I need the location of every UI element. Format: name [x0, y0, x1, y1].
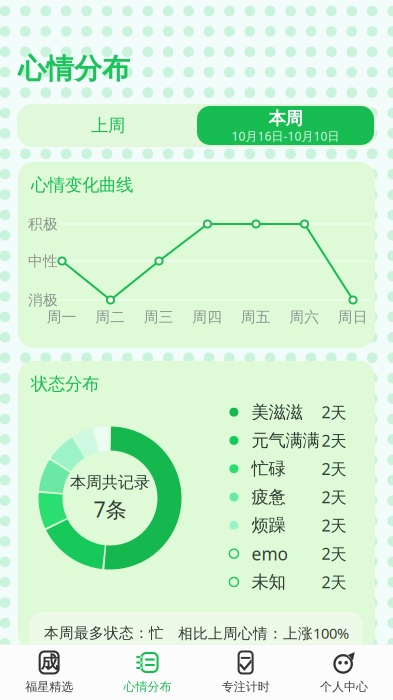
staticText: 未知 [251, 571, 285, 593]
staticText: 上周 [91, 115, 125, 136]
button[interactable]: 心情分布 [98, 645, 196, 699]
staticText: 中性 [28, 252, 58, 270]
staticText: 元气满满 [251, 430, 319, 451]
staticText: 美滋滋 [251, 401, 302, 423]
staticText: 周四 [192, 308, 222, 326]
staticText: 本周共记录 [70, 472, 150, 492]
staticText: 心情分布 [123, 679, 171, 694]
staticText: 相比上周心情：上涨100% [178, 623, 349, 643]
button[interactable]: 上周 [19, 106, 197, 145]
staticText: 福星精选 [25, 679, 73, 694]
staticText: 周一 [47, 308, 77, 326]
staticText: emo [251, 542, 287, 565]
staticText: 成 [41, 652, 58, 673]
staticText: 2天 [321, 543, 346, 564]
staticText: 心情分布 [18, 52, 130, 86]
staticText: 本周 [268, 108, 302, 129]
staticText: 周日 [338, 308, 368, 326]
staticText: 2天 [321, 486, 346, 508]
staticText: 疲惫 [251, 486, 285, 508]
staticText: 2天 [321, 430, 346, 451]
staticText: 周二 [95, 308, 125, 326]
staticText: 周三 [144, 308, 174, 326]
button[interactable]: 个人中心 [295, 645, 393, 699]
staticText: 7条 [93, 495, 126, 523]
staticText: 2天 [321, 401, 346, 423]
staticText: 消极 [28, 291, 58, 309]
staticText: 周五 [241, 308, 271, 326]
button[interactable]: 本周 [197, 106, 374, 145]
staticText: 积极 [28, 215, 58, 233]
staticText: 专注计时 [222, 679, 270, 694]
staticText: 2天 [321, 515, 346, 536]
staticText: 烦躁 [251, 515, 285, 536]
button[interactable]: 成 [0, 645, 98, 699]
staticText: 10月16日-10月10日 [231, 128, 339, 144]
staticText: 2天 [321, 571, 346, 592]
staticText: 本周最多状态：忙 [44, 624, 164, 642]
staticText: 周六 [289, 308, 319, 326]
staticText: 心情变化曲线 [31, 174, 133, 196]
staticText: 忙碌 [251, 458, 285, 479]
staticText: 个人中心 [320, 679, 368, 694]
button[interactable]: 专注计时 [196, 645, 295, 699]
staticText: 2天 [321, 458, 346, 479]
staticText: 状态分布 [31, 373, 99, 395]
